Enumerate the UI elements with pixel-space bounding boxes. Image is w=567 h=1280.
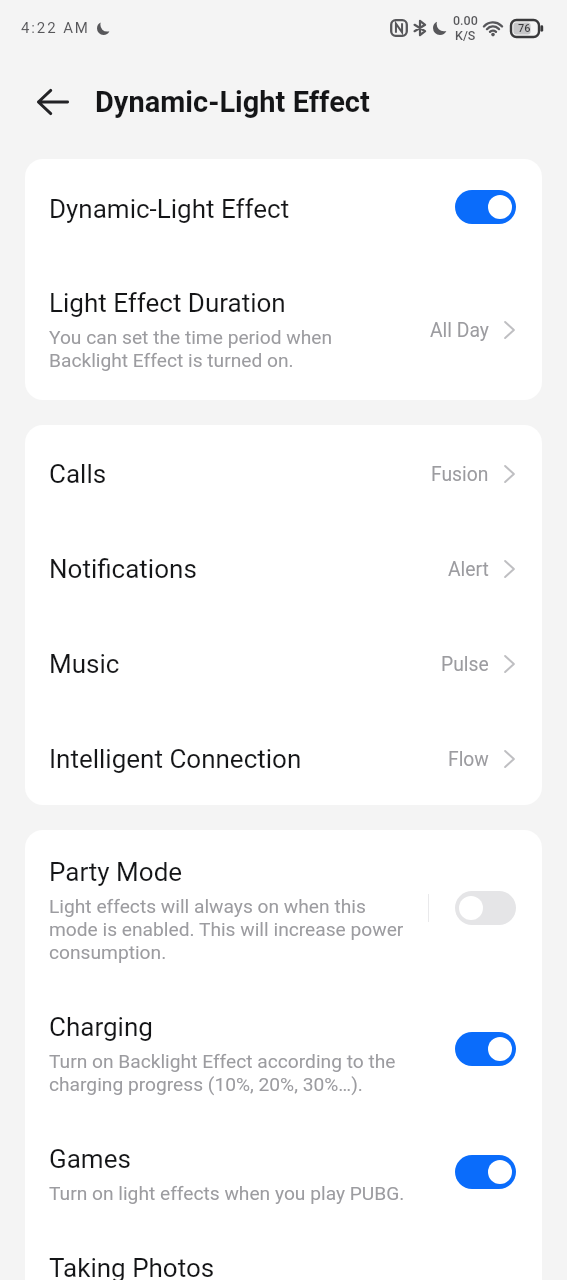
staticText: You can set the time period when Backlig… [49, 326, 333, 372]
button[interactable]: Taking Photos [25, 1229, 542, 1280]
staticText: Flow [448, 748, 489, 771]
button[interactable]: Charging [455, 1032, 516, 1066]
staticText: Pulse [441, 653, 489, 676]
staticText: K/S [455, 28, 476, 43]
staticText: 76 [518, 22, 531, 35]
button[interactable]: Party Mode [25, 830, 542, 988]
button[interactable]: Games [25, 1120, 542, 1229]
staticText: Light Effect Duration [49, 288, 286, 318]
staticText: Dynamic-Light Effect [95, 85, 370, 119]
staticText: Alert [448, 558, 489, 581]
staticText: Dynamic-Light Effect [49, 194, 290, 224]
button[interactable]: Calls [25, 425, 542, 520]
staticText: Notifications [49, 554, 197, 584]
button[interactable]: Dynamic-Light Effect [455, 190, 516, 224]
button[interactable]: Dynamic-Light Effect [25, 159, 542, 257]
staticText: 0.00 [453, 13, 478, 28]
staticText: Calls [49, 459, 107, 489]
button[interactable]: Back [36, 85, 69, 118]
staticText: Party Mode [49, 857, 183, 887]
staticText: Taking Photos [49, 1253, 215, 1280]
button[interactable]: Charging [25, 988, 542, 1120]
button[interactable]: Intelligent Connection [25, 710, 542, 805]
staticText: Games [49, 1144, 131, 1174]
button[interactable]: Music [25, 615, 542, 710]
staticText: Fusion [431, 463, 489, 486]
staticText: All Day [430, 319, 489, 342]
staticText: Turn on light effects when you play PUBG… [49, 1182, 405, 1205]
button[interactable]: Light Effect Duration [25, 257, 542, 400]
staticText: Charging [49, 1012, 153, 1042]
button[interactable]: Notifications [25, 520, 542, 615]
button[interactable]: Games [455, 1155, 516, 1189]
staticText: Intelligent Connection [49, 744, 302, 774]
staticText: 4:22 AM [21, 19, 90, 37]
staticText: Music [49, 649, 120, 679]
staticText: Turn on Backlight Effect according to th… [49, 1050, 396, 1096]
button[interactable]: Party Mode [455, 891, 516, 925]
staticText: Light effects will always on when this m… [49, 895, 404, 964]
